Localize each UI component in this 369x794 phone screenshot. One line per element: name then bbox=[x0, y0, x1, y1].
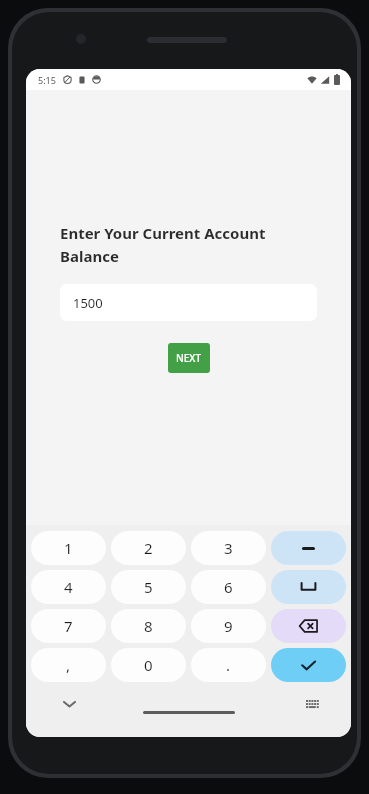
staticText: Enter Your Current Account bbox=[60, 223, 266, 243]
button[interactable]: , bbox=[31, 648, 106, 682]
button[interactable]: 4 bbox=[31, 570, 106, 604]
staticText: 9 bbox=[224, 616, 233, 636]
staticText: 6 bbox=[224, 577, 233, 597]
staticText: 8 bbox=[144, 616, 153, 636]
button[interactable]: Done bbox=[271, 648, 346, 682]
staticText: 4 bbox=[64, 577, 73, 597]
staticText: 2 bbox=[144, 538, 153, 558]
button[interactable]: Space bbox=[271, 570, 346, 604]
staticText: 0 bbox=[144, 655, 153, 675]
staticText: NEXT bbox=[176, 351, 202, 365]
staticText: Balance bbox=[60, 246, 119, 266]
button[interactable]: Switch keyboard bbox=[300, 692, 324, 716]
staticText: 5:15 bbox=[38, 74, 56, 86]
button[interactable]: Minus bbox=[271, 531, 346, 565]
staticText: . bbox=[226, 655, 231, 675]
button[interactable]: 3 bbox=[191, 531, 266, 565]
button[interactable]: 6 bbox=[191, 570, 266, 604]
staticText: , bbox=[66, 655, 71, 675]
button[interactable]: 2 bbox=[111, 531, 186, 565]
button[interactable]: Hide keyboard bbox=[57, 692, 81, 716]
button[interactable]: 1 bbox=[31, 531, 106, 565]
button[interactable]: 1500 bbox=[60, 284, 317, 321]
button[interactable]: Backspace bbox=[271, 609, 346, 643]
button[interactable]: 7 bbox=[31, 609, 106, 643]
button[interactable]: . bbox=[191, 648, 266, 682]
button[interactable]: 5 bbox=[111, 570, 186, 604]
button[interactable]: 8 bbox=[111, 609, 186, 643]
button[interactable]: 9 bbox=[191, 609, 266, 643]
staticText: 1500 bbox=[73, 294, 103, 312]
staticText: 5 bbox=[144, 577, 153, 597]
button[interactable]: 0 bbox=[111, 648, 186, 682]
staticText: 7 bbox=[64, 616, 73, 636]
button[interactable]: NEXT bbox=[168, 343, 210, 373]
staticText: 3 bbox=[224, 538, 233, 558]
staticText: 1 bbox=[64, 538, 73, 558]
